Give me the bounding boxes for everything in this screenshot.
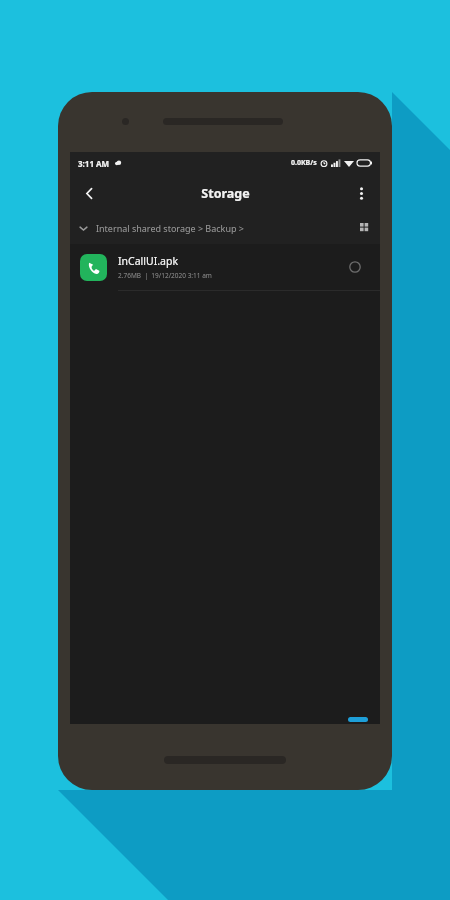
button[interactable]: Back (70, 174, 108, 212)
staticText: Storage (201, 185, 250, 202)
staticText: 3:11 AM (78, 158, 110, 169)
staticText: Internal shared storage > Backup > (96, 222, 244, 234)
staticText: 0.0KB/s (291, 158, 317, 168)
button[interactable]: Grid view (350, 212, 380, 244)
staticText: 2.76MB | 19/12/2020 3:11 am (118, 271, 212, 280)
button[interactable]: More options (342, 174, 380, 212)
staticText: InCallUI.apk (118, 254, 178, 268)
button[interactable]: Select InCallUI.apk (340, 252, 370, 282)
button[interactable]: Expand path (70, 212, 96, 244)
button[interactable]: InCallUI.apk (70, 244, 380, 290)
button[interactable]: Internal shared storage > Backup > (96, 212, 350, 244)
